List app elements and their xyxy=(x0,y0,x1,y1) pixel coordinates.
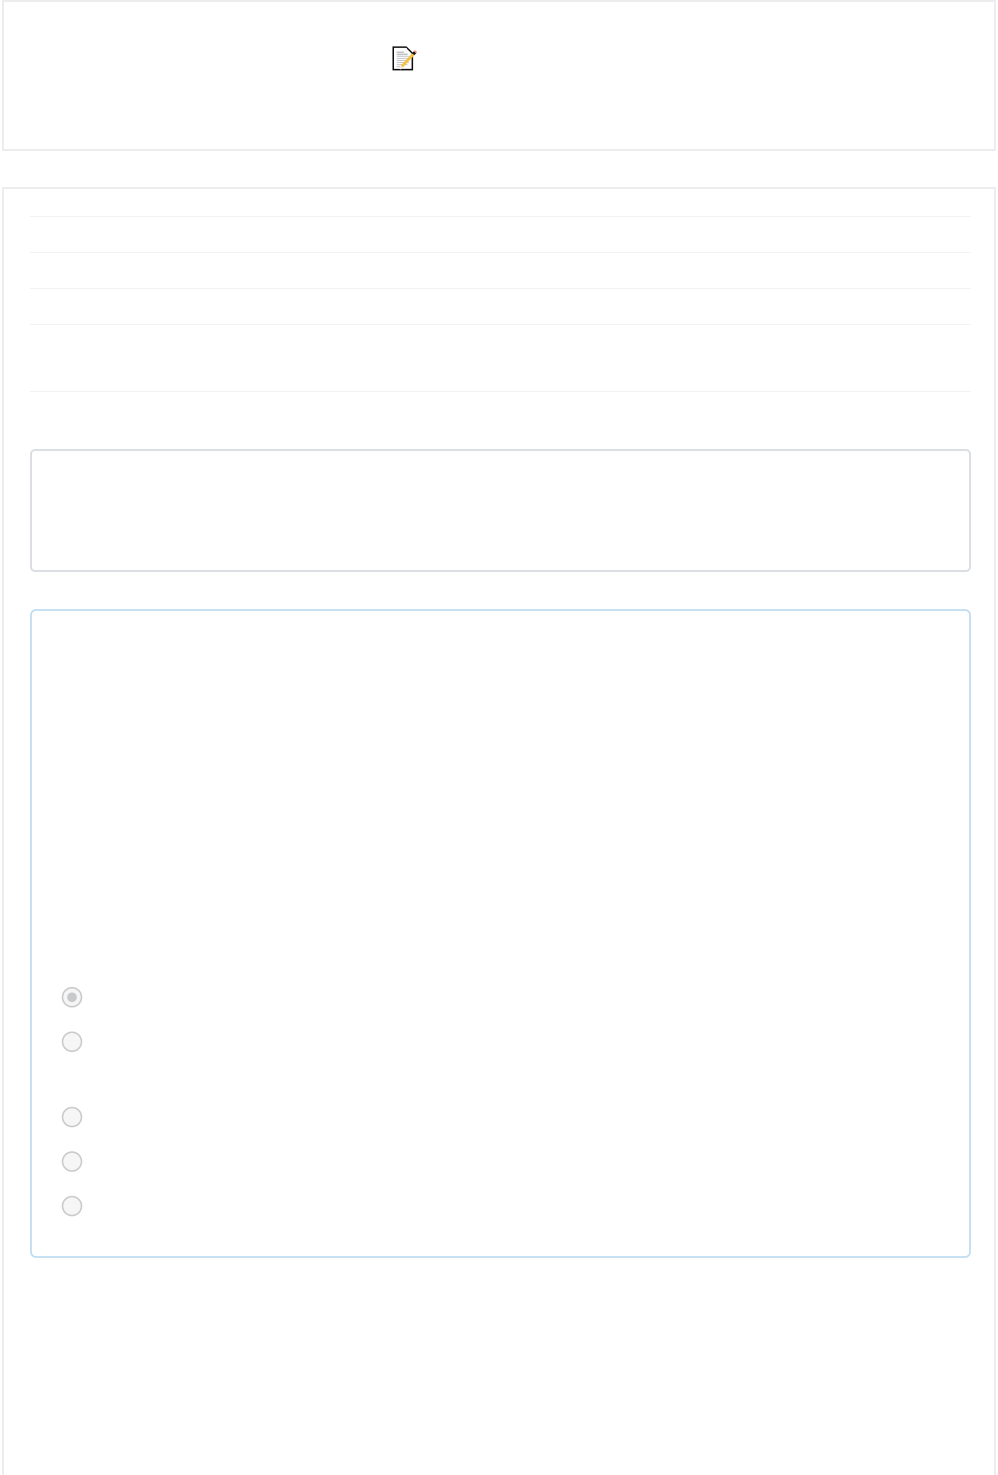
button[interactable]: Strongly agree xyxy=(31,975,970,1019)
button[interactable]: Your answer xyxy=(31,450,970,571)
button[interactable]: Disagree xyxy=(31,1139,970,1184)
button[interactable]: Strongly disagree xyxy=(31,1184,970,1228)
button[interactable]: Name xyxy=(3,188,995,217)
button[interactable]: Neutral xyxy=(31,1095,970,1139)
button[interactable]: Agree xyxy=(31,1019,970,1064)
